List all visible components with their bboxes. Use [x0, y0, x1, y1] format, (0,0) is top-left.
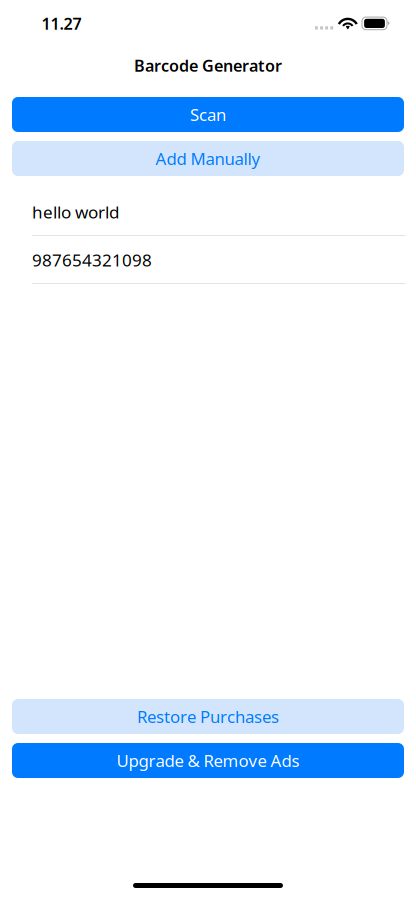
staticText: Upgrade & Remove Ads — [116, 749, 299, 772]
staticText: Barcode Generator — [134, 54, 282, 76]
button[interactable]: Upgrade & Remove Ads — [12, 743, 404, 778]
staticText: Add Manually — [155, 147, 260, 170]
button[interactable]: 987654321098 — [0, 236, 416, 284]
button[interactable]: hello world — [0, 188, 416, 236]
staticText: Restore Purchases — [137, 705, 279, 728]
button[interactable]: Restore Purchases — [12, 699, 404, 734]
staticText: hello world — [32, 200, 119, 224]
button[interactable]: Scan — [12, 97, 404, 132]
button[interactable]: Add Manually — [12, 141, 404, 176]
staticText: Scan — [190, 103, 226, 126]
staticText: 987654321098 — [32, 248, 152, 272]
staticText: 11.27 — [41, 12, 81, 34]
